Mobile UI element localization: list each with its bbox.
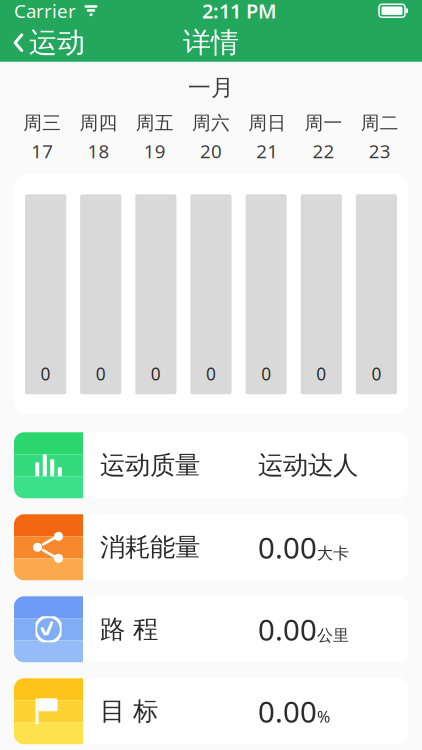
staticText: 18: [87, 138, 109, 163]
staticText: 周五: [136, 112, 174, 134]
staticText: 详情: [183, 25, 239, 60]
staticText: 0: [371, 362, 381, 385]
staticText: 路 程: [100, 614, 158, 645]
button[interactable]: 目 标: [0, 678, 422, 744]
staticText: 0: [206, 362, 216, 385]
staticText: 周二: [361, 112, 399, 134]
staticText: 周三: [23, 112, 61, 134]
staticText: 运动质量: [100, 450, 200, 481]
staticText: 一月: [188, 74, 234, 101]
staticText: 0: [261, 362, 271, 385]
button[interactable]: 消耗能量: [0, 514, 422, 580]
staticText: 目 标: [100, 696, 158, 727]
staticText: 运动: [29, 25, 85, 60]
staticText: 0.00: [258, 610, 317, 649]
staticText: 大卡: [317, 543, 349, 563]
staticText: 周四: [79, 112, 117, 134]
button[interactable]: 运动质量: [0, 432, 422, 498]
staticText: Carrier: [14, 0, 76, 23]
staticText: 17: [31, 138, 53, 163]
staticText: 公里: [317, 625, 349, 645]
staticText: 周六: [192, 112, 230, 134]
staticText: 0.00: [258, 692, 317, 731]
staticText: 21: [256, 138, 278, 163]
staticText: 22: [313, 138, 335, 163]
staticText: 20: [200, 138, 222, 163]
staticText: 23: [369, 138, 391, 163]
staticText: 消耗能量: [100, 532, 200, 563]
staticText: 19: [144, 138, 166, 163]
staticText: 0.00: [258, 528, 317, 567]
staticText: 0: [316, 362, 326, 385]
staticText: 周日: [248, 112, 286, 134]
staticText: 0: [96, 362, 106, 385]
button[interactable]: 运动: [0, 19, 93, 66]
staticText: 运动达人: [258, 450, 358, 481]
staticText: 0: [151, 362, 161, 385]
staticText: 0: [41, 362, 51, 385]
staticText: 2:11 PM: [202, 0, 277, 24]
staticText: 周一: [305, 112, 343, 134]
staticText: %: [317, 706, 330, 727]
button[interactable]: 路 程: [0, 596, 422, 662]
